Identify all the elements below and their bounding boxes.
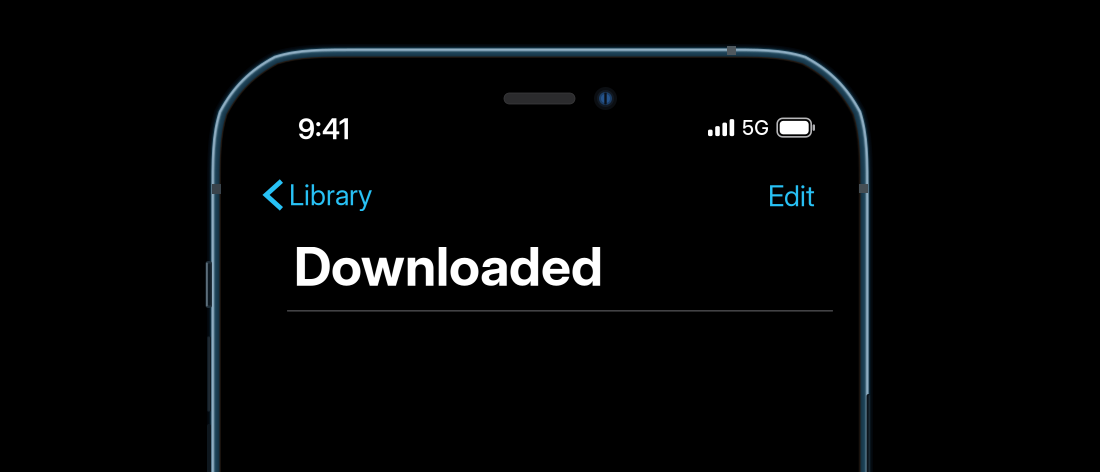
staticText: 5G bbox=[742, 115, 769, 140]
staticText: Library bbox=[289, 178, 372, 212]
button[interactable]: Library bbox=[257, 169, 378, 221]
staticText: 9:41 bbox=[298, 112, 350, 146]
button[interactable]: Edit bbox=[759, 170, 824, 222]
staticText: Downloaded bbox=[294, 234, 603, 298]
staticText: Edit bbox=[768, 179, 815, 213]
